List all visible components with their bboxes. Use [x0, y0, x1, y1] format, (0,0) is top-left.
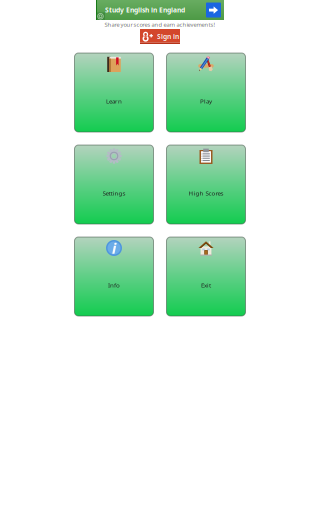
staticText: Learn [106, 97, 122, 105]
button[interactable]: Exit [166, 237, 245, 316]
staticText: Sign in [157, 32, 179, 41]
staticText: Study English in England [105, 5, 185, 15]
staticText: i [112, 238, 116, 258]
staticText: High Scores [188, 189, 223, 197]
staticText: Exit [201, 281, 211, 289]
staticText: Share your scores and earn achievements! [104, 21, 215, 28]
button[interactable]: High Scores [166, 145, 245, 224]
staticText: Play [200, 97, 212, 105]
staticText: Settings [102, 189, 125, 197]
button[interactable]: Sign in [140, 29, 180, 44]
button[interactable]: i [74, 237, 153, 316]
button[interactable]: Settings [74, 145, 153, 224]
staticText: Info [108, 281, 120, 289]
button[interactable]: Study English in England [96, 0, 224, 20]
button[interactable]: Play [166, 53, 245, 132]
button[interactable]: Learn [74, 53, 153, 132]
